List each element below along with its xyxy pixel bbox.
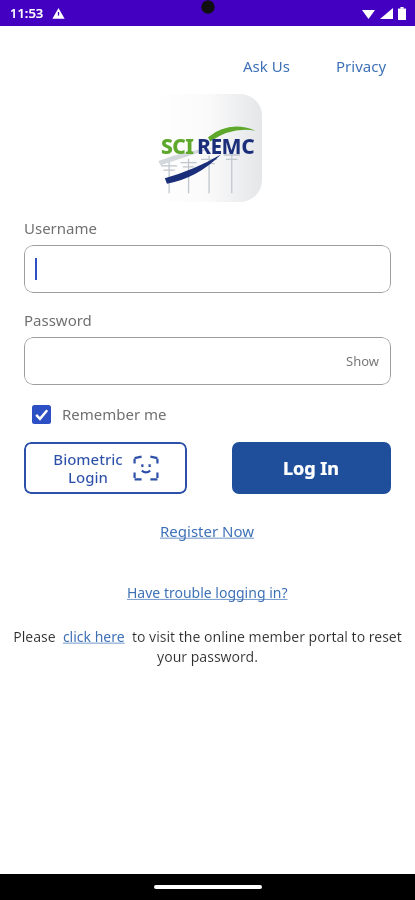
staticText: Have trouble logging in? bbox=[127, 583, 288, 602]
staticText: Biometric Login bbox=[53, 449, 123, 488]
staticText: 11:53 bbox=[10, 4, 44, 22]
staticText: Show bbox=[346, 352, 379, 370]
staticText: Password bbox=[24, 310, 92, 330]
staticText: Please click here to visit the online me… bbox=[10, 627, 405, 666]
other: Biometric face login bbox=[133, 455, 159, 481]
button[interactable]: Have trouble logging in? bbox=[119, 580, 296, 605]
button[interactable]: Log In bbox=[232, 442, 391, 494]
button[interactable]: Remember me bbox=[30, 400, 169, 428]
button[interactable]: Ask Us bbox=[237, 52, 296, 80]
button[interactable]: Privacy bbox=[330, 52, 393, 80]
staticText: Ask Us bbox=[243, 56, 290, 76]
staticText: Register Now bbox=[160, 521, 255, 541]
button[interactable]: Show bbox=[334, 344, 391, 378]
staticText: REMC bbox=[197, 132, 255, 161]
staticText: Remember me bbox=[62, 404, 167, 424]
button[interactable]: Register Now bbox=[152, 518, 263, 544]
staticText: SCI bbox=[161, 132, 194, 161]
button[interactable]: Biometric Login bbox=[24, 442, 187, 494]
staticText: Log In bbox=[283, 456, 340, 481]
button[interactable]: Show bbox=[24, 337, 391, 385]
staticText: Privacy bbox=[336, 56, 387, 76]
staticText: Username bbox=[24, 218, 97, 238]
button[interactable]: Please click here to visit the online me… bbox=[10, 627, 405, 666]
button[interactable] bbox=[24, 245, 391, 293]
